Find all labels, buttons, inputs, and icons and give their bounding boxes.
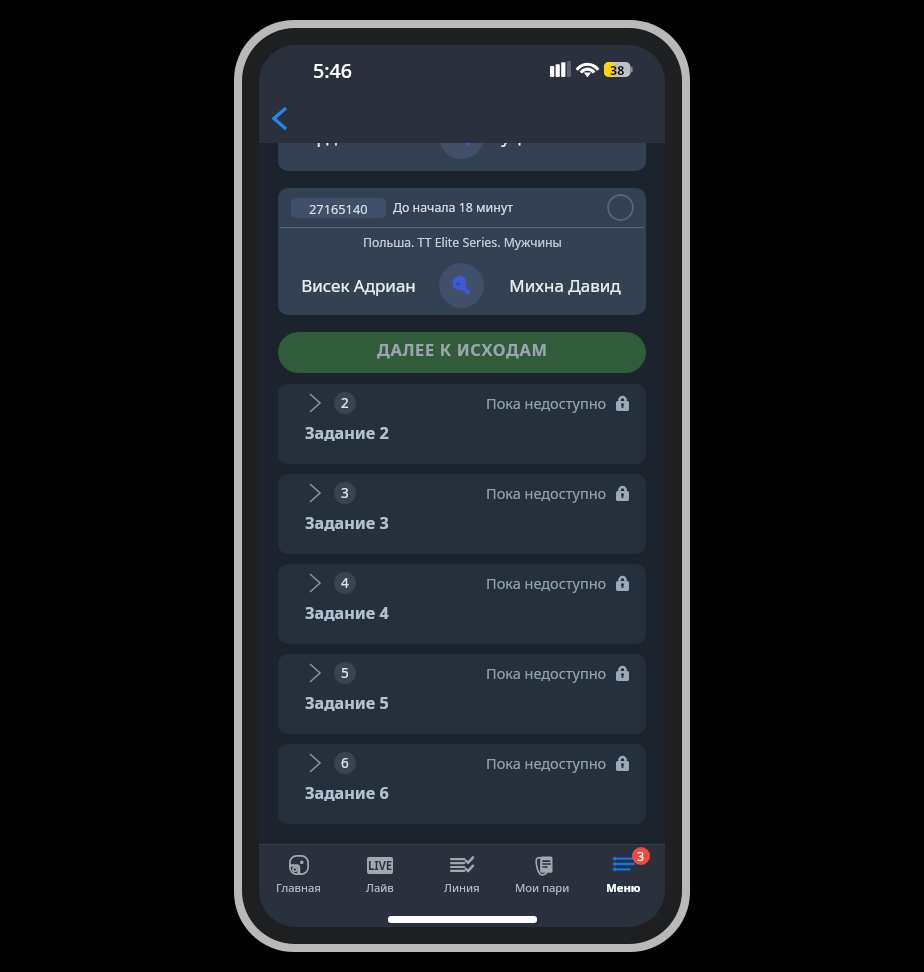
staticText: Куцхал Станислав: [484, 125, 646, 148]
button[interactable]: Главная: [259, 845, 339, 901]
staticText: 27165140: [309, 200, 368, 217]
button[interactable]: 27165140: [278, 188, 646, 315]
staticText: 3: [637, 848, 645, 865]
staticText: 5:46: [313, 57, 352, 84]
staticText: 38: [610, 62, 625, 77]
staticText: Михна Давид: [484, 274, 646, 297]
staticText: LIVE: [368, 858, 393, 874]
staticText: Пока недоступно: [486, 573, 607, 593]
staticText: Главная: [276, 880, 321, 896]
button[interactable]: Мои пари: [502, 845, 583, 901]
staticText: Польша. TT Elite Series. Мужчины: [363, 234, 562, 251]
staticText: 3: [341, 484, 349, 502]
button[interactable]: Гардош Робин: [278, 124, 646, 171]
staticText: Задание 6: [305, 782, 389, 801]
staticText: Пока недоступно: [486, 753, 607, 773]
button[interactable]: ДАЛЕЕ К ИСХОДАМ: [278, 332, 646, 373]
button[interactable]: 2: [278, 384, 646, 464]
staticText: Лайв: [366, 880, 394, 896]
staticText: Висек Адриан: [278, 274, 439, 297]
staticText: Задание 4: [305, 602, 389, 621]
button[interactable]: 4: [278, 564, 646, 644]
staticText: 5: [341, 664, 349, 682]
staticText: Задание 3: [305, 512, 389, 531]
staticText: 4: [341, 574, 349, 592]
staticText: Меню: [606, 880, 641, 896]
staticText: Линия: [444, 880, 480, 896]
staticText: 6: [341, 754, 349, 772]
button[interactable]: Back: [259, 96, 302, 140]
staticText: Пока недоступно: [486, 483, 607, 503]
staticText: Пока недоступно: [486, 393, 607, 413]
button[interactable]: Add to favourites: [607, 194, 634, 221]
button[interactable]: LIVE: [339, 845, 420, 901]
staticText: ДАЛЕЕ К ИСХОДАМ: [377, 338, 548, 360]
button[interactable]: 5: [278, 654, 646, 734]
staticText: 2: [341, 394, 349, 412]
button[interactable]: Table tennis: [439, 263, 484, 308]
staticText: Гардош Робин: [278, 125, 439, 148]
button[interactable]: 6: [278, 744, 646, 824]
staticText: Задание 5: [305, 692, 389, 711]
staticText: Мои пари: [515, 880, 570, 896]
button[interactable]: Линия: [421, 845, 502, 901]
button[interactable]: 3: [278, 474, 646, 554]
staticText: До начала 18 минут: [393, 199, 513, 216]
staticText: Задание 2: [305, 422, 389, 441]
button[interactable]: 3: [583, 845, 664, 901]
staticText: Пока недоступно: [486, 663, 607, 683]
